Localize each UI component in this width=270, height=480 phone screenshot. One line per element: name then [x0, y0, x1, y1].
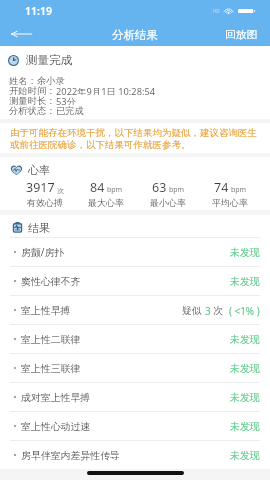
staticText: 3917 [26, 179, 55, 196]
button[interactable]: 室上性三联律 [0, 354, 270, 382]
staticText: 最大心率 [88, 197, 124, 208]
button[interactable]: Back [11, 23, 35, 45]
button[interactable]: 房早伴室内差异性传导 [0, 441, 270, 469]
staticText: 3 [205, 304, 211, 317]
staticText: 室上性三联律 [21, 362, 81, 374]
staticText: 窦性心律不齐 [21, 275, 81, 287]
staticText: bpm [169, 185, 185, 195]
button[interactable]: 房颤/房扑 [0, 238, 270, 266]
staticText: bpm [107, 185, 123, 195]
staticText: 由于可能存在环境干扰，以下结果均为疑似，建议咨询医生或前往医院确诊，以下结果可作… [10, 127, 266, 150]
staticText: 室上性心动过速 [21, 420, 91, 432]
staticText: 最小心率 [150, 197, 186, 208]
staticText: 未发现 [230, 275, 260, 287]
staticText: 未发现 [230, 449, 260, 461]
staticText: 53分 [56, 95, 76, 105]
staticText: 分析结果 [112, 28, 158, 42]
staticText: 11:19 [25, 4, 52, 18]
staticText: 63 [152, 179, 167, 196]
staticText: 姓名： [9, 75, 37, 85]
staticText: 心率 [28, 163, 50, 177]
button[interactable]: 室上性二联律 [0, 325, 270, 353]
staticText: 测量时长： [9, 95, 56, 105]
button[interactable]: 室上性心动过速 [0, 412, 270, 440]
staticText: 开始时间： [9, 85, 56, 95]
staticText: 室上性早搏 [21, 304, 71, 316]
staticText: 成对室上性早搏 [21, 391, 91, 403]
staticText: 回放图 [225, 28, 258, 42]
staticText: 未发现 [230, 246, 260, 258]
staticText: 结果 [28, 221, 50, 235]
staticText: 室上性二联律 [21, 333, 81, 345]
staticText: 分析状态： [9, 105, 56, 115]
staticText: 房早伴室内差异性传导 [21, 449, 120, 461]
staticText: 84 [90, 179, 105, 196]
staticText: bpm [231, 185, 247, 195]
button[interactable]: 回放图 [222, 23, 261, 45]
staticText: 未发现 [230, 362, 260, 374]
staticText: 余小录 [37, 75, 65, 85]
staticText: 测量完成 [26, 53, 72, 67]
staticText: ( <1% ) [229, 304, 260, 317]
staticText: 未发现 [230, 333, 260, 345]
staticText: 未发现 [230, 420, 260, 432]
staticText: 74 [214, 179, 229, 196]
staticText: 疑似 [182, 303, 205, 317]
staticText: 已完成 [56, 105, 84, 115]
staticText: 次 [211, 303, 229, 317]
button[interactable]: 成对室上性早搏 [0, 383, 270, 411]
staticText: 未发现 [230, 391, 260, 403]
staticText: 房颤/房扑 [21, 245, 65, 259]
button[interactable]: 室上性早搏 [0, 296, 270, 324]
button[interactable]: 窦性心律不齐 [0, 267, 270, 295]
staticText: 次 [57, 186, 64, 195]
staticText: 2022年9月1日 10:28:54 [56, 85, 156, 95]
staticText: 平均心率 [212, 197, 248, 208]
staticText: 有效心搏 [27, 197, 63, 208]
staticText: HD [213, 8, 220, 14]
